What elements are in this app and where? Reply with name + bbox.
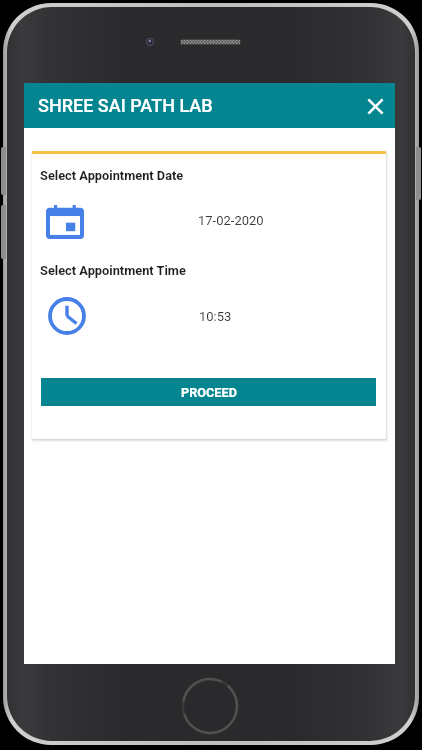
staticText: SHREE SAI PATH LAB xyxy=(38,95,213,116)
button[interactable]: PROCEED xyxy=(41,378,376,406)
button[interactable]: SHREE SAI PATH LAB xyxy=(24,83,395,128)
staticText: 10:53 xyxy=(199,309,232,324)
button[interactable]: Close xyxy=(354,83,395,128)
staticText: PROCEED xyxy=(181,385,237,400)
staticText: 17-02-2020 xyxy=(198,213,264,228)
staticText: Select Appointment Date xyxy=(40,168,184,183)
button[interactable]: Select time xyxy=(46,295,88,337)
staticText: Select Appointment Time xyxy=(40,263,186,278)
button[interactable]: Select date xyxy=(44,203,86,241)
